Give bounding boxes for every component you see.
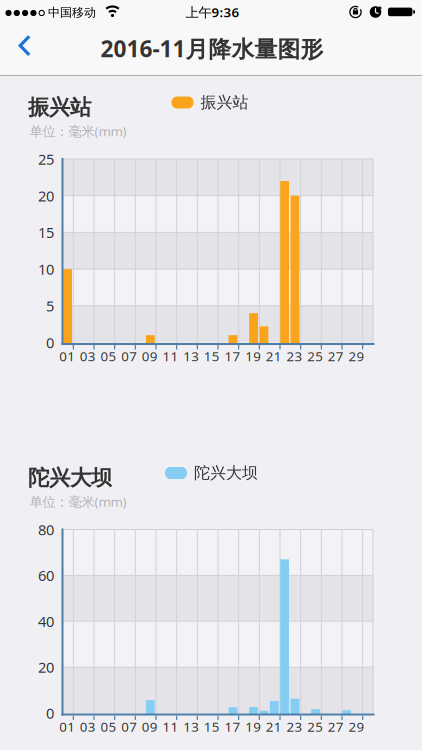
staticText: 11: [162, 347, 178, 365]
staticText: 17: [224, 347, 240, 365]
staticText: 15: [38, 223, 54, 242]
staticText: 09: [142, 347, 158, 365]
staticText: 陀兴大坝: [28, 465, 112, 491]
staticText: 21: [266, 347, 282, 365]
staticText: 13: [183, 718, 199, 735]
staticText: 15: [204, 718, 220, 735]
staticText: 20: [38, 186, 54, 205]
staticText: 05: [100, 347, 116, 365]
staticText: 25: [307, 347, 323, 365]
staticText: 27: [328, 347, 344, 365]
staticText: 09: [142, 718, 158, 735]
staticText: 单位：毫米(mm): [29, 493, 126, 510]
staticText: 10: [38, 259, 54, 279]
staticText: 03: [80, 347, 96, 365]
staticText: 20: [38, 657, 54, 677]
staticText: 01: [59, 347, 75, 365]
staticText: 15: [204, 347, 220, 365]
staticText: 25: [38, 149, 54, 169]
staticText: 21: [266, 718, 282, 735]
staticText: 40: [38, 611, 54, 631]
staticText: 05: [100, 718, 116, 735]
staticText: 23: [286, 718, 302, 735]
staticText: 17: [224, 718, 240, 735]
staticText: 07: [121, 347, 137, 365]
staticText: 07: [121, 718, 137, 735]
staticText: 陀兴大坝: [194, 463, 258, 483]
staticText: 0: [46, 703, 54, 723]
staticText: 01: [59, 718, 75, 735]
staticText: 60: [38, 566, 54, 585]
staticText: 25: [307, 718, 323, 735]
staticText: 振兴站: [28, 94, 91, 121]
staticText: 11: [162, 718, 178, 735]
staticText: 振兴站: [200, 93, 248, 112]
button[interactable]: 陀兴大坝: [165, 463, 258, 483]
staticText: 23: [286, 347, 302, 365]
staticText: 29: [348, 347, 364, 365]
staticText: 上午9:36: [185, 3, 239, 21]
staticText: 5: [46, 296, 54, 316]
staticText: 03: [80, 718, 96, 735]
staticText: 2016-11月降水量图形: [100, 33, 323, 63]
staticText: 13: [183, 347, 199, 365]
button[interactable]: Back: [0, 28, 44, 63]
button[interactable]: 振兴站: [171, 93, 248, 112]
staticText: 27: [328, 718, 344, 735]
staticText: 19: [245, 347, 261, 365]
staticText: 单位：毫米(mm): [29, 122, 126, 140]
staticText: 中国移动: [48, 5, 96, 20]
staticText: 80: [38, 520, 54, 539]
staticText: 19: [245, 718, 261, 735]
staticText: 29: [348, 718, 364, 735]
staticText: 0: [46, 333, 54, 352]
